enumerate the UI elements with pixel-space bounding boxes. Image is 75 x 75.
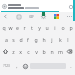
- staticText: l: [67, 36, 69, 43]
- staticText: i: [54, 24, 56, 31]
- staticText: w: [8, 24, 13, 31]
- button[interactable]: r: [21, 21, 28, 33]
- button[interactable]: v: [32, 45, 40, 57]
- button[interactable]: f: [24, 33, 32, 45]
- button[interactable]: Attach: [67, 3, 74, 10]
- staticText: f: [27, 36, 29, 43]
- button[interactable]: Emoji: [14, 12, 23, 21]
- button[interactable]: Contact: [1, 3, 7, 9]
- button[interactable]: t: [28, 21, 35, 33]
- staticText: ?123: [3, 64, 10, 68]
- staticText: r: [23, 24, 26, 31]
- button[interactable]: More options: [65, 12, 74, 21]
- staticText: e: [16, 24, 19, 31]
- staticText: t: [31, 24, 33, 31]
- staticText: y: [38, 24, 41, 31]
- button[interactable]: l: [64, 33, 72, 45]
- button[interactable]: o: [59, 21, 67, 33]
- button[interactable]: k: [56, 33, 64, 45]
- button[interactable]: p: [67, 21, 75, 33]
- button[interactable]: x: [17, 45, 24, 57]
- button[interactable]: g: [32, 33, 40, 45]
- staticText: a: [5, 36, 8, 43]
- button[interactable]: ?123: [0, 57, 13, 75]
- staticText: h: [42, 36, 46, 43]
- button[interactable]: Shift: [0, 45, 10, 57]
- staticText: p: [69, 24, 73, 31]
- button[interactable]: z: [10, 45, 17, 57]
- staticText: q: [2, 24, 6, 31]
- staticText: j: [51, 36, 53, 43]
- staticText: n: [50, 48, 54, 55]
- button[interactable]: i: [51, 21, 59, 33]
- staticText: m: [58, 48, 63, 55]
- staticText: GIF: [29, 15, 34, 19]
- button[interactable]: Stickers: [52, 12, 61, 21]
- staticText: k: [59, 36, 62, 43]
- button[interactable]: Backspace: [64, 45, 75, 57]
- staticText: c: [27, 48, 30, 55]
- button[interactable]: a: [3, 33, 10, 45]
- button[interactable]: m: [56, 45, 64, 57]
- staticText: o: [61, 24, 65, 31]
- button[interactable]: ,: [13, 57, 21, 75]
- button[interactable]: Settings: [39, 12, 48, 21]
- button[interactable]: u: [43, 21, 51, 33]
- staticText: u: [45, 24, 49, 31]
- button[interactable]: c: [24, 45, 32, 57]
- staticText: ,: [16, 63, 18, 70]
- button[interactable]: GIF: [27, 12, 36, 21]
- button[interactable]: h: [40, 33, 48, 45]
- staticText: x: [19, 48, 22, 55]
- staticText: z: [12, 48, 15, 55]
- button[interactable]: j: [48, 33, 56, 45]
- button[interactable]: e: [14, 21, 21, 33]
- staticText: .: [70, 63, 72, 70]
- staticText: s: [12, 36, 15, 43]
- staticText: g: [34, 36, 38, 43]
- button[interactable]: w: [7, 21, 14, 33]
- staticText: d: [19, 36, 23, 43]
- button[interactable]: n: [48, 45, 56, 57]
- button[interactable]: y: [35, 21, 43, 33]
- staticText: v: [35, 48, 38, 55]
- button[interactable]: Expand toolbar: [1, 12, 10, 21]
- button[interactable]: q: [0, 21, 7, 33]
- button[interactable]: b: [40, 45, 48, 57]
- button[interactable]: s: [10, 33, 17, 45]
- staticText: b: [42, 48, 46, 55]
- button[interactable]: d: [17, 33, 24, 45]
- button[interactable]: Emoji: [21, 57, 29, 75]
